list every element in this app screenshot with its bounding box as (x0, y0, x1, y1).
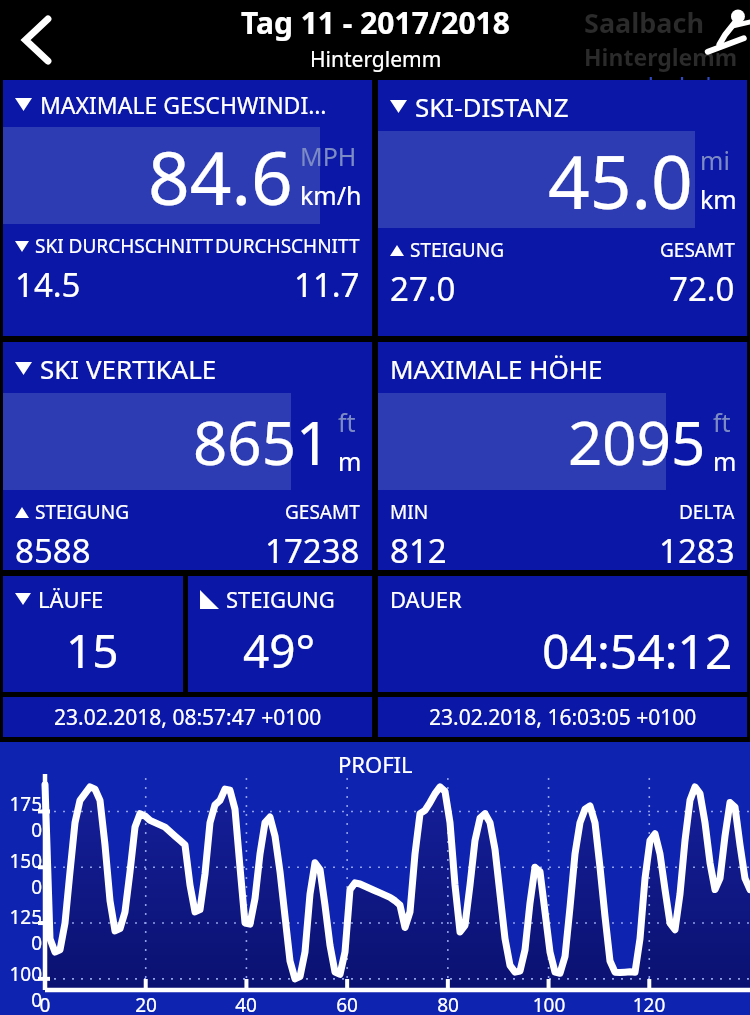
staticText: m (713, 444, 737, 478)
button[interactable]: STEIGUNG (188, 576, 372, 692)
staticText: DURCHSCHNITT (215, 233, 360, 259)
staticText: 23.02.2018, 16:03:05 +0100 (429, 703, 697, 732)
staticText: LÄUFE (38, 584, 104, 614)
staticText: GESAMT (660, 237, 735, 263)
staticText: 45.0 (548, 131, 693, 228)
staticText: SKI DURCHSCHNITT (35, 233, 214, 259)
staticText: 60 (325, 992, 369, 1015)
staticText: DAUER (390, 584, 462, 614)
staticText: MAXIMALE GESCHWINDI… (40, 89, 327, 120)
staticText: Saalbach (584, 4, 704, 41)
staticText: 15 (66, 619, 119, 682)
button[interactable]: 23.02.2018, 16:03:05 +0100 (378, 697, 747, 737)
staticText: 1250 (0, 904, 42, 956)
button[interactable]: SKI VERTIKALE (3, 342, 372, 570)
staticText: 8588 (15, 528, 91, 570)
staticText: 1500 (0, 848, 42, 900)
staticText: 27.0 (390, 266, 456, 311)
staticText: 100 (527, 992, 571, 1015)
staticText: Hinterglemm (310, 45, 442, 74)
staticText: 23.02.2018, 08:57:47 +0100 (54, 703, 322, 732)
staticText: km/h (300, 178, 362, 212)
staticText: 1750 (0, 791, 42, 843)
staticText: 84.6 (148, 127, 293, 224)
staticText: mi (700, 143, 730, 177)
staticText: Tag 11 - 2017/2018 (241, 2, 510, 43)
staticText: SKI-DISTANZ (415, 89, 569, 124)
staticText: DELTA (679, 499, 735, 525)
button[interactable]: MAXIMALE HÖHE (378, 342, 747, 570)
button[interactable]: SKI-DISTANZ (378, 80, 747, 336)
button[interactable]: LÄUFE (3, 576, 183, 692)
button[interactable]: 23.02.2018, 08:57:47 +0100 (3, 697, 372, 737)
staticText: GESAMT (285, 499, 360, 525)
staticText: 14.5 (15, 262, 81, 307)
staticText: ft (338, 405, 356, 439)
staticText: MAXIMALE HÖHE (390, 351, 603, 386)
button[interactable]: Back (6, 9, 68, 71)
staticText: 2095 (568, 401, 706, 483)
staticText: MPH (300, 139, 357, 173)
staticText: 0 (23, 992, 67, 1015)
staticText: ft (713, 405, 731, 439)
staticText: 04:54:12 (542, 618, 733, 683)
staticText: PROFIL (338, 749, 413, 779)
staticText: STEIGUNG (410, 237, 504, 263)
staticText: m (338, 444, 362, 478)
staticText: Hinterglemm (584, 41, 738, 72)
staticText: 20 (124, 992, 168, 1015)
staticText: 1283 (659, 528, 735, 570)
staticText: www.markus-koch.org (576, 72, 746, 80)
staticText: km (700, 182, 737, 216)
button[interactable]: MAXIMALE GESCHWINDI… (3, 80, 372, 336)
staticText: MIN (390, 499, 429, 525)
staticText: STEIGUNG (226, 584, 335, 614)
staticText: 812 (390, 528, 447, 570)
button[interactable]: DAUER (378, 576, 747, 692)
staticText: 40 (224, 992, 268, 1015)
staticText: 80 (426, 992, 470, 1015)
staticText: SKI VERTIKALE (40, 351, 217, 386)
staticText: STEIGUNG (35, 499, 129, 525)
staticText: 1000 (0, 961, 42, 1013)
staticText: 120 (627, 992, 671, 1015)
staticText: 8651 (193, 401, 331, 483)
staticText: 17238 (265, 528, 360, 570)
staticText: 11.7 (294, 262, 360, 307)
staticText: 49° (243, 619, 316, 682)
staticText: 72.0 (669, 266, 735, 311)
